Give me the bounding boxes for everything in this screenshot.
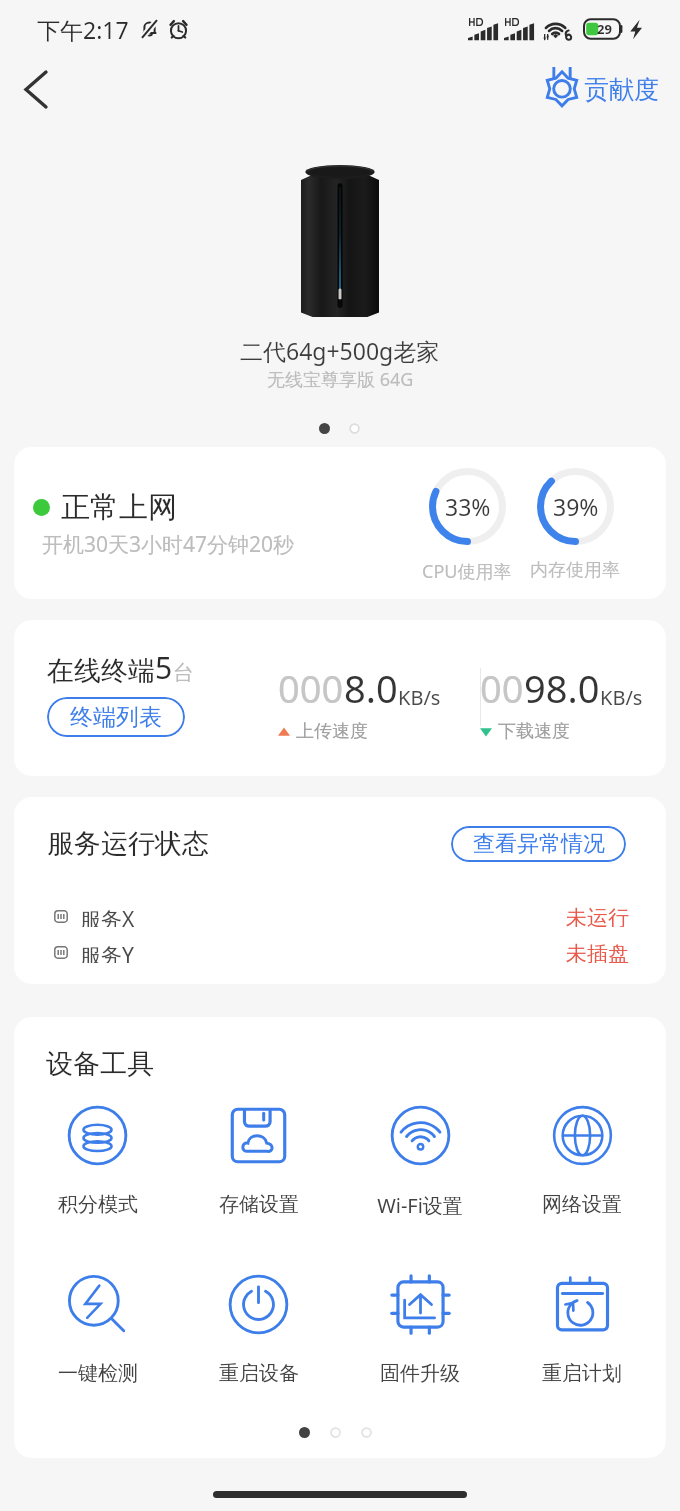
staticText: 下载速度 xyxy=(498,720,570,743)
staticText: CPU使用率 xyxy=(422,559,512,584)
staticText: 服务X xyxy=(80,905,135,927)
staticText: KB/s xyxy=(398,684,441,711)
staticText: 无线宝尊享版 64G xyxy=(267,367,414,392)
staticText: 开机30天3小时47分钟20秒 xyxy=(42,530,295,559)
staticText: 5 xyxy=(155,647,173,688)
staticText: 000 xyxy=(278,662,344,714)
button[interactable]: 服务X xyxy=(47,905,629,927)
staticText: 未运行 xyxy=(566,905,629,927)
staticText: KB/s xyxy=(600,684,643,711)
button[interactable]: Back xyxy=(11,64,61,114)
staticText: 服务运行状态 xyxy=(47,827,209,861)
staticText: 正常上网 xyxy=(61,489,177,526)
staticText: 未插盘 xyxy=(566,941,629,963)
staticText: 贡献度 xyxy=(584,74,659,105)
button[interactable]: 终端列表 xyxy=(47,697,185,737)
button[interactable]: 重启设备 xyxy=(178,1274,339,1386)
staticText: 设备工具 xyxy=(46,1047,154,1081)
staticText: 固件升级 xyxy=(380,1361,460,1386)
staticText: 二代64g+500g老家 xyxy=(240,335,440,366)
staticText: 查看异常情况 xyxy=(473,830,605,858)
staticText: 8.0 xyxy=(344,662,398,714)
staticText: 00 xyxy=(480,662,524,714)
button[interactable]: 积分模式 xyxy=(17,1105,178,1217)
staticText: 下午2:17 xyxy=(37,14,129,45)
staticText: 一键检测 xyxy=(58,1361,138,1386)
staticText: 上传速度 xyxy=(296,720,368,743)
staticText: 网络设置 xyxy=(542,1192,622,1217)
staticText: 33% xyxy=(445,491,491,522)
staticText: 服务Y xyxy=(80,941,134,963)
staticText: 98.0 xyxy=(524,662,600,714)
staticText: 存储设置 xyxy=(219,1192,299,1217)
button[interactable]: 服务Y xyxy=(47,941,629,963)
staticText: 台 xyxy=(173,660,194,686)
staticText: 积分模式 xyxy=(58,1192,138,1217)
staticText: 终端列表 xyxy=(70,703,162,732)
button[interactable]: 存储设置 xyxy=(178,1105,339,1217)
staticText: 29 xyxy=(597,20,612,38)
button[interactable]: 查看异常情况 xyxy=(451,826,626,862)
button[interactable]: 一键检测 xyxy=(17,1274,178,1386)
button[interactable]: 重启计划 xyxy=(501,1274,663,1386)
staticText: 重启设备 xyxy=(219,1361,299,1386)
button[interactable]: 固件升级 xyxy=(339,1274,501,1386)
button[interactable]: 贡献度 xyxy=(545,70,659,109)
staticText: 39% xyxy=(553,491,599,522)
staticText: 重启计划 xyxy=(542,1361,622,1386)
button[interactable]: Wi-Fi设置 xyxy=(339,1105,501,1219)
staticText: Wi-Fi设置 xyxy=(377,1192,463,1219)
staticText: 在线终端 xyxy=(47,654,155,688)
staticText: 内存使用率 xyxy=(530,559,620,582)
button[interactable]: 网络设置 xyxy=(501,1105,663,1217)
